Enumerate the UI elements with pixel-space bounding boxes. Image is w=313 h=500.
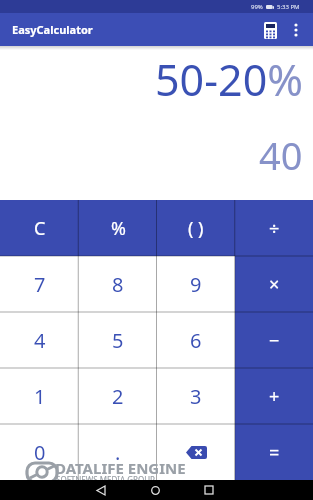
staticText: % [111, 216, 126, 241]
staticText: 99% [251, 3, 263, 11]
button[interactable]: 8 [79, 256, 157, 312]
staticText: 40 [259, 129, 303, 181]
staticText: . [115, 439, 121, 466]
staticText: ÷ [269, 216, 280, 241]
staticText: = [269, 440, 280, 465]
button[interactable] [81, 480, 121, 500]
button[interactable]: 6 [157, 312, 235, 368]
button[interactable]: . [79, 424, 157, 480]
button[interactable]: C [0, 200, 79, 256]
staticText: 7 [34, 271, 46, 298]
button[interactable]: 7 [0, 256, 79, 312]
button[interactable]: = [235, 424, 313, 480]
staticText: − [269, 328, 280, 353]
button[interactable] [189, 480, 229, 500]
button[interactable] [135, 480, 175, 500]
button[interactable]: 0 [0, 424, 79, 480]
button[interactable]: + [235, 368, 313, 424]
button[interactable]: − [235, 312, 313, 368]
staticText: + [269, 384, 280, 409]
staticText: 4 [34, 327, 46, 354]
button[interactable]: ÷ [235, 200, 313, 256]
button[interactable]: × [235, 256, 313, 312]
button[interactable]: ( ) [157, 200, 235, 256]
staticText: EasyCalculator [12, 22, 93, 37]
staticText: × [269, 272, 280, 297]
staticText: 0 [34, 439, 46, 466]
staticText: 50-20% [155, 50, 303, 109]
button[interactable] [157, 424, 235, 480]
staticText: 3 [190, 383, 202, 410]
button[interactable] [287, 17, 305, 43]
button[interactable]: 1 [0, 368, 79, 424]
staticText: C [34, 216, 46, 241]
staticText: 5 [112, 327, 124, 354]
button[interactable]: EasyCalculator [12, 22, 93, 37]
staticText: 2 [112, 383, 124, 410]
button[interactable]: 2 [79, 368, 157, 424]
button[interactable]: 4 [0, 312, 79, 368]
button[interactable] [257, 17, 283, 43]
button[interactable]: 3 [157, 368, 235, 424]
staticText: 8 [112, 271, 124, 298]
staticText: SOFTNEWS MEDIA GROUP [56, 474, 155, 485]
staticText: 5:33 PM [277, 3, 300, 11]
button[interactable]: % [79, 200, 157, 256]
staticText: 9 [190, 271, 202, 298]
button[interactable]: 9 [157, 256, 235, 312]
button[interactable]: 5 [79, 312, 157, 368]
staticText: DATALIFE ENGINE [55, 458, 186, 478]
staticText: 6 [190, 327, 202, 354]
staticText: ( ) [188, 216, 204, 241]
staticText: 1 [34, 383, 46, 410]
